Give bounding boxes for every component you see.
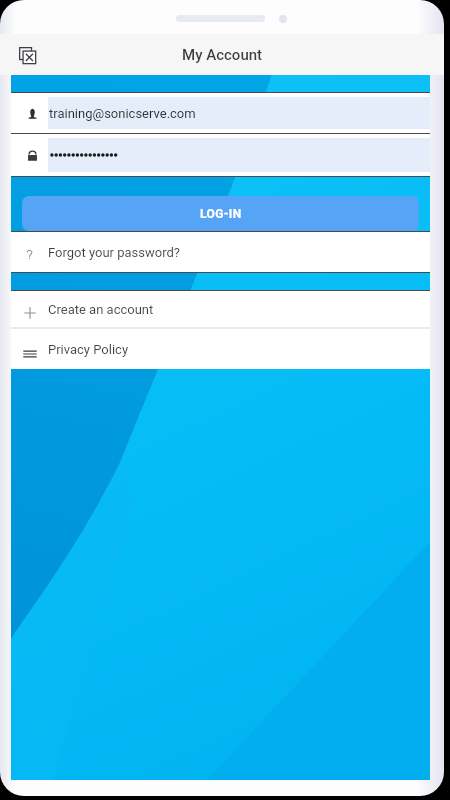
button[interactable]: Create an account (11, 291, 430, 327)
button[interactable]: LOG-IN (22, 196, 419, 231)
button[interactable]: Close (11, 40, 43, 70)
staticText: LOG-IN (200, 207, 242, 221)
staticText: Forgot your password? (48, 245, 180, 260)
staticText: Privacy Policy (48, 342, 129, 357)
staticText: training@sonicserve.com (49, 106, 196, 121)
button[interactable] (11, 134, 430, 176)
staticText: Create an account (48, 302, 154, 317)
staticText: My Account (182, 46, 263, 64)
button[interactable]: training@sonicserve.com (11, 93, 430, 133)
button[interactable]: Forgot your password? (11, 232, 430, 272)
button[interactable]: Privacy Policy (11, 329, 430, 369)
